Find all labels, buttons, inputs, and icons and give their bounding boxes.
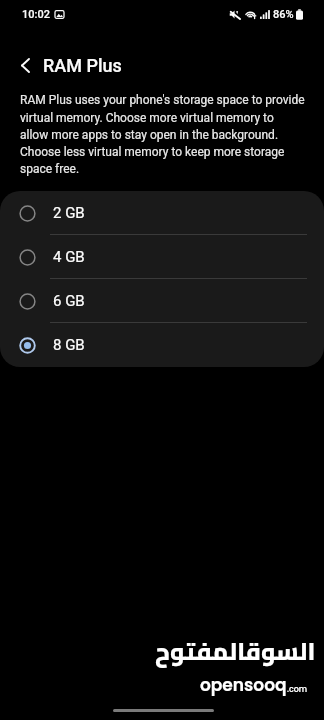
button[interactable]: Back xyxy=(5,45,45,85)
staticText: 6 GB xyxy=(53,292,85,310)
staticText: opensooq xyxy=(200,673,287,697)
staticText: السوق​المفتوح xyxy=(155,629,316,674)
staticText: RAM Plus xyxy=(43,55,122,76)
button[interactable]: 4 GB xyxy=(0,235,324,279)
staticText: .com xyxy=(287,684,308,695)
staticText: 86% xyxy=(273,8,294,21)
button[interactable]: 2 GB xyxy=(0,191,324,235)
staticText: 2 GB xyxy=(53,204,85,222)
staticText: RAM Plus uses your phone's storage space… xyxy=(20,93,305,176)
staticText: 10:02 xyxy=(22,8,50,21)
staticText: 8 GB xyxy=(53,336,85,354)
button[interactable]: 8 GB xyxy=(0,323,324,367)
staticText: 4 GB xyxy=(53,248,85,266)
button[interactable]: 6 GB xyxy=(0,279,324,323)
